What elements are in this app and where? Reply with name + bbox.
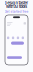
staticText: Get started free: [4, 10, 28, 13]
staticText: with AI tools: [6, 5, 27, 8]
staticText: Design faster: [4, 1, 28, 5]
